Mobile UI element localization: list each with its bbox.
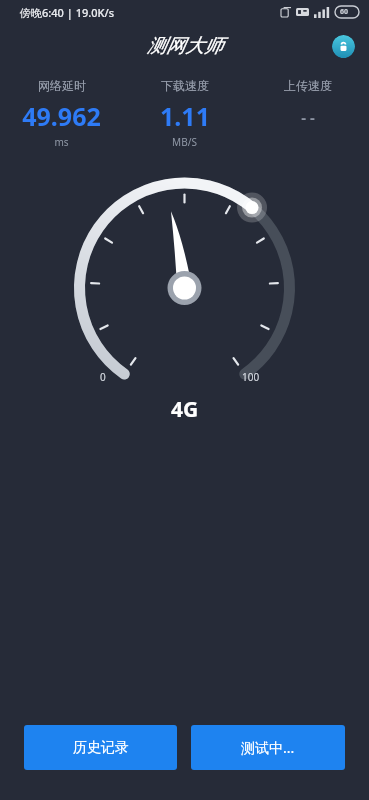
- staticText: 60: [340, 7, 349, 17]
- staticText: 下载速度: [161, 78, 209, 93]
- staticText: 1.11: [160, 99, 210, 133]
- staticText: 测网大师: [147, 34, 223, 58]
- button[interactable]: 测试中...: [191, 725, 345, 770]
- staticText: - -: [301, 107, 315, 127]
- staticText: 4G: [171, 395, 199, 424]
- staticText: 100: [242, 370, 260, 384]
- staticText: 傍晚6:40 | 19.0K/s: [20, 5, 115, 20]
- staticText: 49.962: [22, 99, 101, 133]
- staticText: 网络延时: [38, 78, 86, 93]
- staticText: MB/S: [172, 135, 197, 149]
- staticText: 上传速度: [284, 78, 332, 93]
- staticText: ms: [54, 135, 69, 149]
- staticText: 历史记录: [73, 739, 129, 757]
- button[interactable]: Security: [332, 35, 355, 58]
- staticText: 0: [100, 370, 106, 384]
- button[interactable]: 历史记录: [24, 725, 177, 770]
- staticText: 测试中...: [241, 738, 295, 757]
